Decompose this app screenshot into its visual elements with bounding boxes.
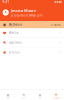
staticText: 9:41 (2, 0, 9, 4)
staticText: Cart (38, 97, 41, 99)
staticText: Home (6, 97, 10, 99)
staticText: Track Order (9, 41, 23, 44)
button[interactable]: Home (0, 89, 16, 100)
staticText: jessica.moore@mail.com (11, 14, 42, 17)
button[interactable]: Settings (0, 48, 64, 57)
staticText: Account (53, 97, 59, 99)
button[interactable]: Cart (32, 89, 48, 100)
staticText: Jessica Moore (11, 8, 36, 13)
staticText: My Orders (9, 23, 22, 26)
button[interactable]: Account (48, 89, 64, 100)
staticText: Wishlist (9, 31, 19, 35)
staticText: Settings (9, 51, 20, 54)
staticText: 3 active (51, 23, 61, 26)
button[interactable]: My Orders (0, 21, 64, 28)
button[interactable]: Wishlist (0, 28, 64, 38)
button[interactable]: Search (16, 89, 32, 100)
button[interactable]: Track Order (0, 38, 64, 48)
